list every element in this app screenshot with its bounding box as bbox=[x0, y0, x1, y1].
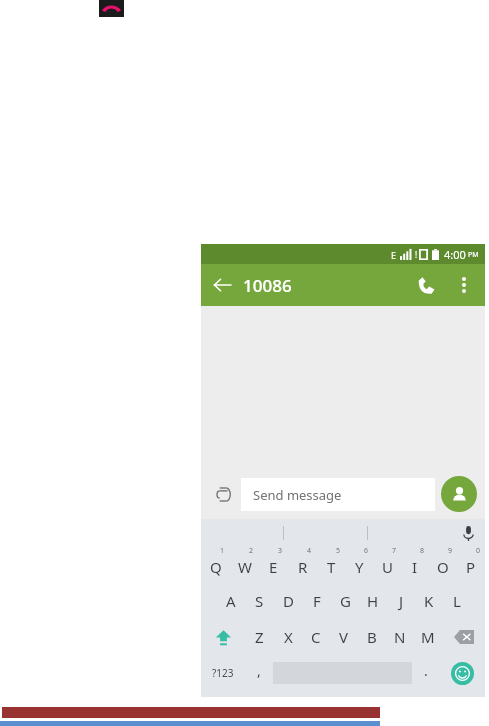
staticText: V bbox=[339, 627, 349, 647]
staticText: 4:00 bbox=[444, 247, 466, 262]
button[interactable]: Attach bbox=[209, 478, 241, 510]
button[interactable]: X bbox=[274, 619, 302, 655]
staticText: Send message bbox=[253, 486, 342, 504]
staticText: F bbox=[313, 591, 321, 611]
staticText: Q bbox=[210, 557, 222, 577]
staticText: R bbox=[298, 557, 308, 577]
button[interactable]: O bbox=[429, 547, 457, 583]
staticText: 2 bbox=[249, 546, 254, 556]
button[interactable]: More options bbox=[447, 268, 481, 302]
button[interactable]: S bbox=[245, 583, 274, 619]
staticText: C bbox=[311, 627, 321, 647]
button[interactable]: End call bbox=[99, 0, 124, 17]
staticText: B bbox=[367, 627, 377, 647]
button[interactable]: N bbox=[386, 619, 414, 655]
staticText: E bbox=[391, 249, 397, 261]
staticText: 10086 bbox=[243, 274, 292, 297]
button[interactable]: Shift bbox=[201, 619, 245, 655]
button[interactable]: V bbox=[330, 619, 358, 655]
button[interactable]: Send message bbox=[253, 478, 435, 511]
staticText: H bbox=[367, 591, 379, 611]
staticText: 3 bbox=[278, 546, 283, 556]
staticText: K bbox=[424, 591, 434, 611]
button[interactable]: J bbox=[387, 583, 415, 619]
staticText: L bbox=[453, 591, 461, 611]
staticText: 1 bbox=[220, 546, 225, 556]
button[interactable]: P bbox=[457, 547, 485, 583]
button[interactable]: T bbox=[317, 547, 345, 583]
staticText: G bbox=[340, 591, 351, 611]
staticText: I bbox=[412, 557, 418, 577]
button[interactable]: G bbox=[331, 583, 359, 619]
button[interactable]: M bbox=[414, 619, 442, 655]
button[interactable]: W bbox=[230, 547, 259, 583]
staticText: Z bbox=[255, 627, 264, 647]
button[interactable]: R bbox=[288, 547, 317, 583]
button[interactable]: H bbox=[359, 583, 387, 619]
button[interactable]: D bbox=[274, 583, 303, 619]
staticText: PM bbox=[468, 250, 479, 260]
staticText: 8 bbox=[420, 546, 425, 556]
staticText: 6 bbox=[364, 546, 369, 556]
staticText: W bbox=[238, 557, 252, 577]
staticText: 0 bbox=[476, 546, 481, 556]
staticText: D bbox=[283, 591, 294, 611]
button[interactable]: E bbox=[259, 547, 288, 583]
staticText: . bbox=[424, 661, 428, 680]
staticText: 4 bbox=[307, 546, 312, 556]
button[interactable]: U bbox=[373, 547, 401, 583]
button[interactable]: ?123 bbox=[201, 655, 245, 691]
button[interactable]: Back bbox=[201, 264, 243, 306]
staticText: ?123 bbox=[212, 666, 234, 680]
button[interactable]: Call bbox=[405, 264, 447, 306]
staticText: M bbox=[421, 627, 435, 647]
button[interactable]: B bbox=[358, 619, 386, 655]
staticText: Y bbox=[355, 557, 364, 577]
button[interactable]: I bbox=[401, 547, 429, 583]
staticText: 9 bbox=[448, 546, 453, 556]
button[interactable]: Q bbox=[201, 547, 230, 583]
staticText: O bbox=[437, 557, 449, 577]
staticText: T bbox=[327, 557, 336, 577]
staticText: S bbox=[255, 591, 264, 611]
button[interactable]: L bbox=[443, 583, 471, 619]
button[interactable]: Y bbox=[345, 547, 373, 583]
button[interactable]: Emoji bbox=[440, 655, 485, 691]
staticText: ! bbox=[415, 249, 418, 260]
button[interactable]: Z bbox=[245, 619, 274, 655]
staticText: , bbox=[257, 661, 261, 680]
button[interactable]: F bbox=[303, 583, 331, 619]
button[interactable]: K bbox=[415, 583, 443, 619]
button[interactable]: Voice input bbox=[451, 519, 485, 547]
staticText: U bbox=[382, 557, 393, 577]
button[interactable]: A bbox=[216, 583, 245, 619]
staticText: J bbox=[399, 591, 404, 611]
staticText: X bbox=[284, 627, 293, 647]
staticText: 5 bbox=[336, 546, 341, 556]
button[interactable]: C bbox=[302, 619, 330, 655]
button[interactable]: , bbox=[245, 655, 273, 691]
button[interactable]: Send bbox=[441, 476, 477, 512]
button[interactable]: . bbox=[412, 655, 440, 691]
staticText: N bbox=[394, 627, 406, 647]
button[interactable]: Backspace bbox=[442, 619, 485, 655]
staticText: 7 bbox=[392, 546, 397, 556]
staticText: E bbox=[269, 557, 278, 577]
staticText: A bbox=[226, 591, 236, 611]
staticText: P bbox=[466, 557, 476, 577]
